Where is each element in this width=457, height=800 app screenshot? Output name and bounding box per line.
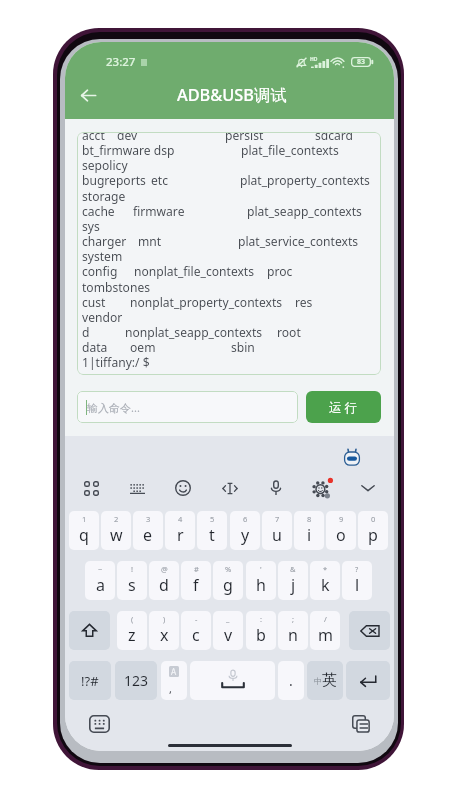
staticText: & — [290, 564, 296, 574]
staticText: ' — [260, 564, 262, 574]
button[interactable]: 中 — [307, 661, 343, 700]
staticText: % — [225, 564, 232, 574]
staticText: cust — [82, 294, 106, 310]
staticText: ; — [292, 614, 295, 624]
staticText: ~ — [98, 564, 103, 574]
staticText: 0 — [371, 514, 376, 524]
staticText: !?# — [81, 672, 99, 690]
staticText: y — [241, 524, 250, 546]
staticText: 5 — [210, 514, 215, 524]
button[interactable]: 9 — [326, 511, 356, 550]
staticText: plat_seapp_contexts — [247, 203, 362, 219]
button[interactable]: 1 — [69, 511, 99, 550]
staticText: a — [96, 574, 105, 596]
staticText: sdcard — [315, 132, 354, 143]
button[interactable]: 123 — [115, 661, 157, 700]
staticText: 8 — [307, 514, 312, 524]
staticText: v — [224, 624, 233, 646]
button[interactable]: Switch keyboard — [86, 711, 112, 737]
staticText: _ — [226, 614, 230, 624]
staticText: , — [169, 681, 172, 696]
staticText: j — [291, 574, 296, 596]
staticText: g — [223, 574, 233, 596]
staticText: . — [289, 671, 293, 690]
button[interactable]: # — [181, 561, 211, 600]
staticText: p — [368, 524, 378, 546]
button[interactable]: ' — [246, 561, 276, 600]
staticText: s — [128, 574, 136, 596]
staticText: 1|tiffany:/ $ — [82, 354, 150, 370]
button[interactable]: / — [310, 611, 340, 650]
button[interactable]: ~ — [85, 561, 115, 600]
button[interactable]: 7 — [262, 511, 292, 550]
staticText: root — [277, 324, 301, 340]
staticText: ) — [163, 614, 166, 624]
staticText: 23:27 — [106, 54, 136, 70]
button[interactable]: - — [181, 611, 211, 650]
button[interactable]: 4 — [165, 511, 195, 550]
button[interactable]: % — [213, 561, 243, 600]
staticText: - — [195, 614, 198, 624]
button[interactable]: ) — [149, 611, 179, 650]
button[interactable]: 5 — [197, 511, 227, 550]
button[interactable]: ; — [278, 611, 308, 650]
button[interactable]: Emoji — [171, 476, 195, 500]
button[interactable]: Text cursor — [218, 476, 242, 500]
staticText: 2 — [114, 514, 119, 524]
staticText: o — [336, 524, 346, 546]
button[interactable]: : — [246, 611, 276, 650]
staticText: plat_service_contexts — [238, 233, 359, 249]
staticText: nonplat_file_contexts — [134, 263, 255, 279]
button[interactable]: _ — [213, 611, 243, 650]
button[interactable]: & — [278, 561, 308, 600]
staticText: d — [82, 324, 90, 340]
staticText: h — [256, 574, 266, 596]
staticText: oem — [130, 339, 156, 355]
button[interactable]: Shift — [69, 611, 110, 650]
staticText: 运 行 — [329, 399, 358, 416]
button[interactable]: ! — [117, 561, 147, 600]
staticText: 123 — [124, 671, 149, 690]
button[interactable]: Back — [66, 73, 110, 117]
staticText: x — [160, 624, 169, 646]
button[interactable]: !?# — [69, 661, 111, 700]
staticText: i — [307, 524, 312, 546]
button[interactable]: Comma — [161, 661, 187, 700]
button[interactable]: Assistant — [340, 446, 364, 470]
button[interactable]: 3 — [133, 511, 163, 550]
staticText: etc — [151, 172, 168, 188]
button[interactable]: 2 — [101, 511, 131, 550]
button[interactable]: 运 行 — [306, 391, 381, 423]
button[interactable]: @ — [149, 561, 179, 600]
button[interactable]: ( — [117, 611, 147, 650]
button[interactable]: ? — [342, 561, 372, 600]
button[interactable]: Collapse keyboard — [356, 476, 380, 500]
button[interactable]: Settings — [310, 476, 334, 500]
button[interactable]: 输入命令... — [77, 391, 298, 423]
staticText: sbin — [231, 339, 255, 355]
button[interactable]: . — [278, 661, 304, 700]
staticText: c — [192, 624, 200, 646]
staticText: sepolicy — [82, 157, 128, 173]
staticText: system — [82, 248, 123, 264]
button[interactable]: Apps — [79, 476, 103, 500]
button[interactable]: Backspace — [349, 611, 390, 650]
button[interactable]: Keyboard layout — [125, 476, 149, 500]
button[interactable]: 0 — [358, 511, 388, 550]
button[interactable]: Enter — [346, 661, 390, 700]
button[interactable]: Voice input — [264, 476, 288, 500]
staticText: * — [323, 564, 328, 574]
button[interactable]: * — [310, 561, 340, 600]
staticText: 3 — [146, 514, 151, 524]
staticText: 英 — [322, 671, 337, 690]
staticText: e — [143, 524, 153, 546]
staticText: b — [256, 624, 266, 646]
staticText: t — [209, 524, 215, 546]
button[interactable]: Space — [190, 661, 275, 700]
staticText: k — [321, 574, 330, 596]
button[interactable]: 6 — [230, 511, 260, 550]
button[interactable]: Clipboard — [348, 711, 374, 737]
staticText: q — [79, 524, 89, 546]
button[interactable]: 8 — [294, 511, 324, 550]
staticText: m — [318, 624, 333, 646]
